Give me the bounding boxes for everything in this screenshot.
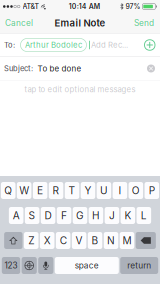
- button[interactable]: Dictation: [38, 257, 53, 274]
- button[interactable]: O: [129, 182, 143, 199]
- button[interactable]: Q: [1, 182, 15, 199]
- staticText: S: [29, 209, 36, 222]
- button[interactable]: F: [57, 207, 71, 224]
- button[interactable]: Arthur Bodolec: [20, 38, 86, 51]
- button[interactable]: U: [97, 182, 111, 199]
- staticText: U: [100, 184, 108, 197]
- staticText: tap to edit optional messages: [24, 85, 135, 94]
- button[interactable]: L: [137, 207, 151, 224]
- staticText: AT&T: [22, 2, 39, 11]
- staticText: H: [92, 209, 100, 222]
- button[interactable]: space: [55, 257, 119, 274]
- button[interactable]: N: [104, 232, 118, 249]
- staticText: E: [37, 184, 43, 197]
- button[interactable]: R: [49, 182, 63, 199]
- button[interactable]: V: [72, 232, 86, 249]
- button[interactable]: X: [40, 232, 54, 249]
- staticText: To be done: [37, 64, 81, 73]
- staticText: V: [76, 234, 83, 247]
- button[interactable]: A: [9, 207, 23, 224]
- staticText: Subject:: [4, 64, 33, 73]
- staticText: 10:14 AM: [69, 2, 100, 11]
- button[interactable]: tap to edit optional messages: [0, 82, 160, 96]
- staticText: B: [92, 234, 99, 247]
- button[interactable]: P: [144, 182, 159, 199]
- button[interactable]: Z: [24, 232, 38, 249]
- button[interactable]: return: [120, 257, 158, 274]
- button[interactable]: H: [89, 207, 103, 224]
- staticText: Arthur Bodolec: [25, 40, 82, 50]
- button[interactable]: 123: [2, 257, 20, 274]
- button[interactable]: Next keyboard: [22, 257, 37, 274]
- button[interactable]: Cancel: [0, 13, 40, 33]
- button[interactable]: M: [120, 232, 134, 249]
- staticText: O: [132, 184, 140, 197]
- staticText: C: [60, 234, 67, 247]
- button[interactable]: S: [25, 207, 39, 224]
- staticText: K: [124, 209, 131, 222]
- staticText: W: [19, 184, 29, 197]
- button[interactable]: T: [65, 182, 79, 199]
- staticText: Email Note: [54, 17, 105, 29]
- staticText: R: [53, 184, 60, 197]
- button[interactable]: J: [105, 207, 119, 224]
- staticText: Cancel: [5, 18, 33, 28]
- staticText: 97%: [125, 2, 140, 11]
- staticText: P: [149, 184, 155, 197]
- button[interactable]: Send: [124, 13, 160, 33]
- button[interactable]: Clear subject: [147, 64, 160, 72]
- button[interactable]: C: [56, 232, 70, 249]
- staticText: A: [13, 209, 20, 222]
- staticText: G: [76, 209, 84, 222]
- staticText: Y: [84, 184, 91, 197]
- button[interactable]: G: [73, 207, 87, 224]
- staticText: Add Rec...: [91, 40, 128, 50]
- staticText: L: [141, 209, 147, 222]
- button[interactable]: K: [121, 207, 135, 224]
- staticText: space: [75, 260, 99, 270]
- button[interactable]: I: [113, 182, 127, 199]
- button[interactable]: D: [41, 207, 55, 224]
- staticText: Z: [28, 234, 34, 247]
- staticText: M: [122, 234, 131, 247]
- staticText: F: [61, 209, 67, 222]
- button[interactable]: E: [33, 182, 47, 199]
- staticText: To:: [4, 40, 15, 49]
- staticText: N: [107, 234, 115, 247]
- staticText: J: [109, 209, 115, 222]
- button[interactable]: Add Recipient: [144, 40, 160, 50]
- button[interactable]: Delete: [136, 232, 156, 249]
- staticText: Send: [134, 18, 154, 28]
- staticText: I: [118, 184, 121, 197]
- staticText: X: [44, 234, 51, 247]
- staticText: D: [45, 209, 52, 222]
- staticText: T: [68, 184, 75, 197]
- staticText: Q: [4, 184, 12, 197]
- button[interactable]: Shift: [4, 232, 22, 249]
- button[interactable]: Y: [81, 182, 95, 199]
- staticText: 123: [4, 260, 17, 270]
- button[interactable]: W: [17, 182, 31, 199]
- staticText: return: [127, 260, 151, 270]
- button[interactable]: B: [88, 232, 102, 249]
